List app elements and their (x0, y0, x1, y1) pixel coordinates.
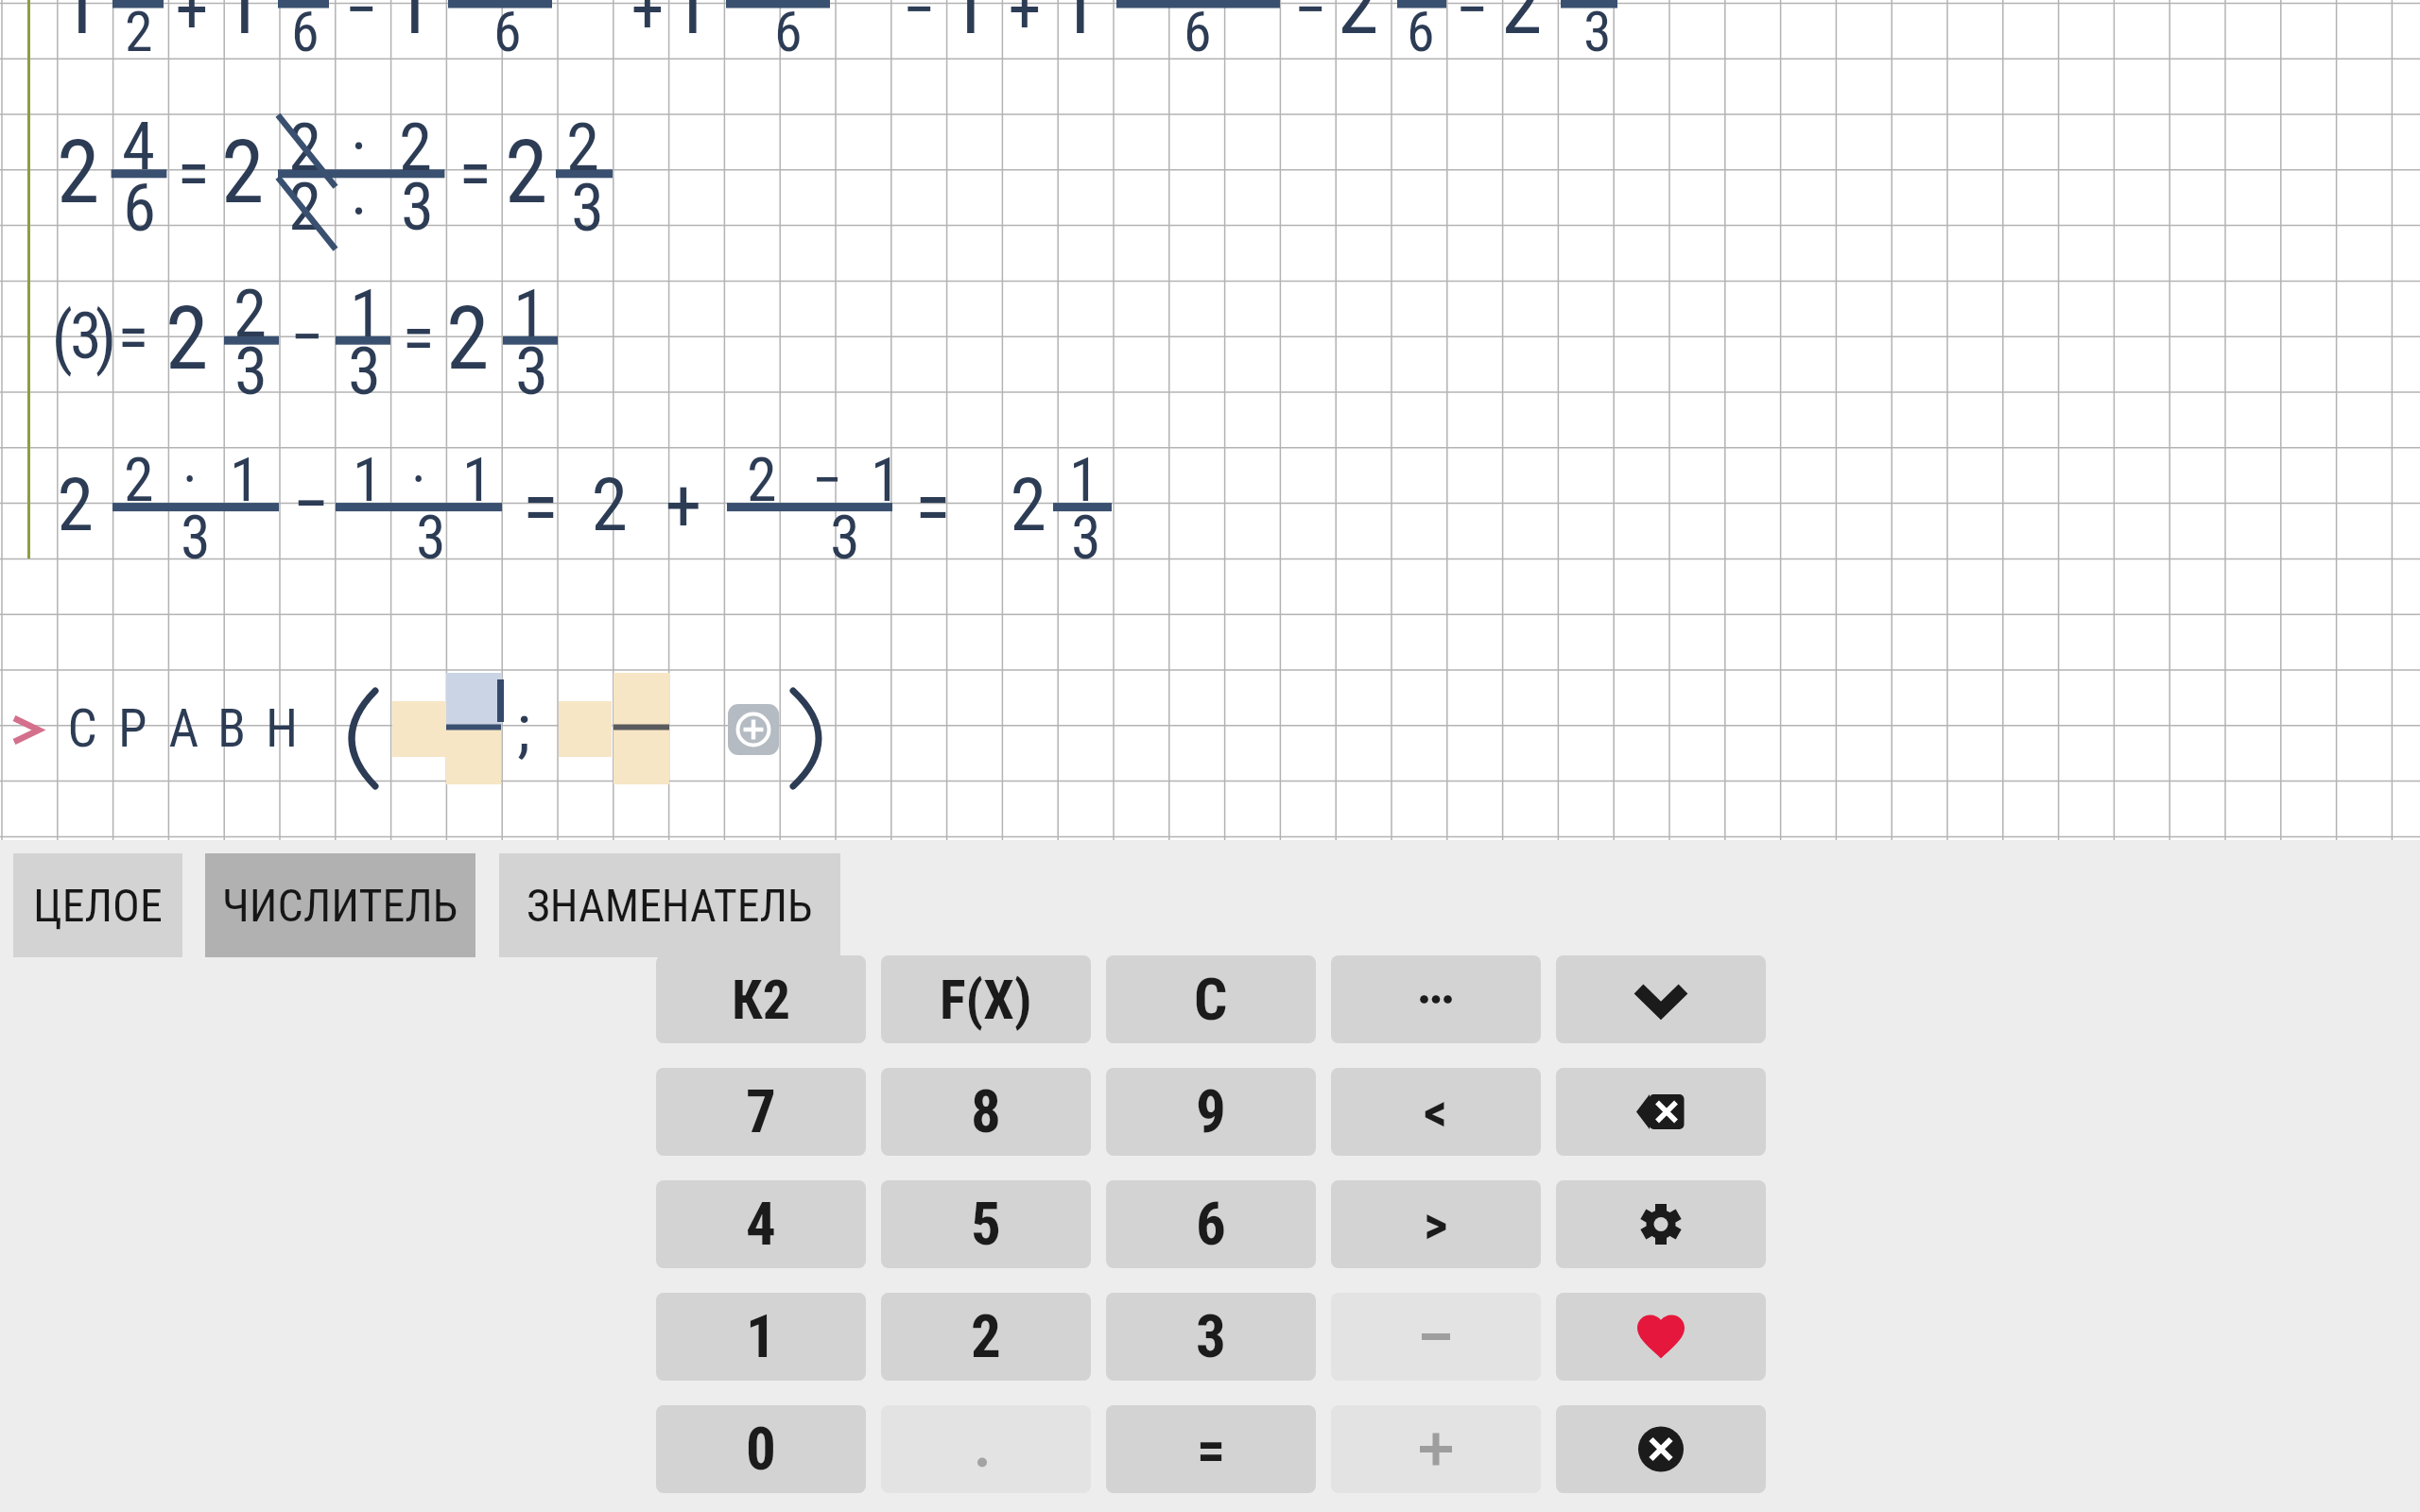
button[interactable]: 5 (881, 1180, 1091, 1268)
staticText: C (1194, 965, 1228, 1034)
button[interactable] (881, 1405, 1091, 1493)
button[interactable] (1331, 1293, 1541, 1381)
staticText: < (1424, 1081, 1448, 1143)
button[interactable]: 4 (656, 1180, 866, 1268)
button[interactable] (1331, 955, 1541, 1043)
button[interactable] (1331, 1405, 1541, 1493)
button[interactable]: F(X) (881, 955, 1091, 1043)
button[interactable]: 0 (656, 1405, 866, 1493)
button[interactable] (1556, 1405, 1766, 1493)
button[interactable]: = (1106, 1405, 1316, 1493)
staticText: ЗНАМЕНАТЕЛЬ (527, 879, 813, 932)
button[interactable] (559, 701, 612, 757)
staticText: 9 (1196, 1077, 1226, 1147)
button[interactable]: 3 (1106, 1293, 1316, 1381)
staticText: 6 (1196, 1190, 1226, 1260)
staticText: 2 (971, 1302, 1001, 1372)
button[interactable] (392, 701, 446, 757)
button[interactable] (1556, 955, 1766, 1043)
button[interactable]: К2 (656, 955, 866, 1043)
button[interactable] (728, 704, 779, 755)
button[interactable]: 9 (1106, 1068, 1316, 1156)
staticText: К2 (732, 968, 791, 1032)
staticText: 3 (1196, 1302, 1226, 1372)
button[interactable]: 1 (656, 1293, 866, 1381)
staticText: ЦЕЛОЕ (33, 879, 163, 932)
button[interactable]: C (1106, 955, 1316, 1043)
button[interactable] (1556, 1293, 1766, 1381)
staticText: 8 (971, 1077, 1001, 1147)
button[interactable] (1556, 1180, 1766, 1268)
button[interactable]: 8 (881, 1068, 1091, 1156)
staticText: F(X) (940, 968, 1032, 1032)
button[interactable] (614, 730, 669, 784)
button[interactable]: ЦЕЛОЕ (13, 853, 182, 957)
staticText: 5 (971, 1190, 1001, 1260)
button[interactable]: > (1331, 1180, 1541, 1268)
staticText: 7 (746, 1077, 776, 1147)
button[interactable]: 7 (656, 1068, 866, 1156)
button[interactable]: ЗНАМЕНАТЕЛЬ (499, 853, 840, 957)
staticText: 0 (746, 1415, 776, 1485)
staticText: ЧИСЛИТЕЛЬ (222, 879, 458, 932)
button[interactable] (614, 673, 669, 726)
button[interactable] (1556, 1068, 1766, 1156)
button[interactable] (446, 730, 501, 784)
staticText: > (1424, 1194, 1448, 1256)
button[interactable] (446, 673, 501, 726)
staticText: 4 (746, 1190, 776, 1260)
button[interactable]: 6 (1106, 1180, 1316, 1268)
button[interactable]: < (1331, 1068, 1541, 1156)
button[interactable]: 2 (881, 1293, 1091, 1381)
staticText: = (1197, 1417, 1226, 1483)
staticText: 1 (746, 1302, 776, 1372)
button[interactable]: ЧИСЛИТЕЛЬ (205, 853, 475, 957)
